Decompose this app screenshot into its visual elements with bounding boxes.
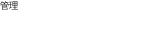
- staticText: 管理: [0, 0, 18, 11]
